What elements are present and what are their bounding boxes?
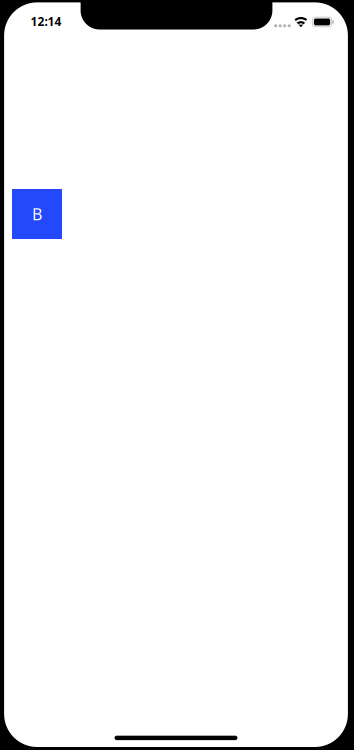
staticText: 12:14	[31, 13, 62, 29]
staticText: B	[32, 203, 42, 225]
button[interactable]: B	[12, 189, 62, 239]
